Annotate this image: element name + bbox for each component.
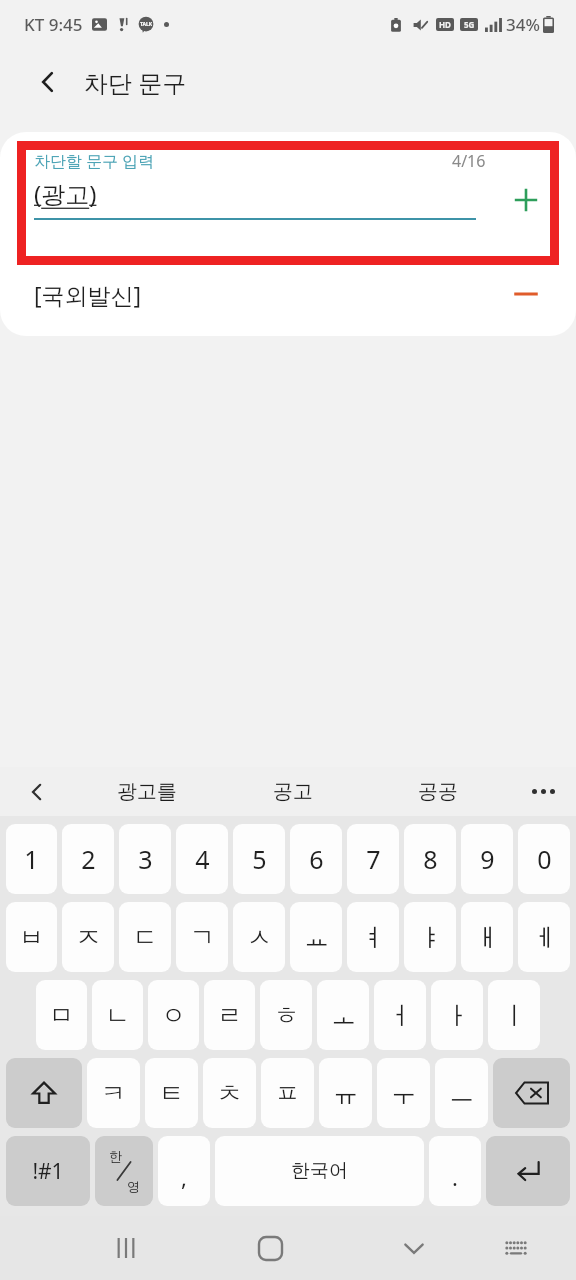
- button[interactable]: 6: [290, 824, 342, 894]
- staticText: 9: [480, 842, 495, 876]
- staticText: 8: [423, 842, 438, 876]
- button[interactable]: Add phrase: [500, 174, 552, 226]
- staticText: HD: [439, 19, 451, 30]
- staticText: 5G: [464, 19, 475, 30]
- button[interactable]: 2: [62, 824, 114, 894]
- button[interactable]: Enter: [486, 1136, 570, 1206]
- staticText: ㅇ: [161, 1000, 186, 1031]
- staticText: ㅠ: [333, 1078, 358, 1109]
- staticText: 4: [195, 842, 210, 876]
- button[interactable]: 8: [404, 824, 456, 894]
- staticText: 공고: [273, 779, 313, 804]
- staticText: 6: [309, 842, 324, 876]
- button[interactable]: ㅏ: [431, 980, 483, 1050]
- button[interactable]: Recent apps: [98, 1220, 154, 1276]
- button[interactable]: 1: [6, 824, 57, 894]
- staticText: 2: [81, 842, 96, 876]
- staticText: ㅁ: [49, 1000, 74, 1031]
- button[interactable]: .: [429, 1136, 481, 1206]
- button[interactable]: Back: [26, 60, 70, 104]
- button[interactable]: ㅓ: [374, 980, 426, 1050]
- staticText: ㅅ: [247, 922, 272, 953]
- staticText: 광고를: [117, 779, 177, 804]
- staticText: 차단할 문구 입력: [34, 150, 155, 172]
- button[interactable]: ㄹ: [204, 980, 255, 1050]
- button[interactable]: ㅠ: [319, 1058, 372, 1128]
- button[interactable]: 공공: [365, 767, 510, 816]
- button[interactable]: Previous suggestions: [0, 767, 74, 816]
- staticText: 한국어: [291, 1159, 348, 1183]
- staticText: ㅔ: [532, 922, 557, 953]
- button[interactable]: 3: [119, 824, 171, 894]
- staticText: 0: [537, 842, 552, 876]
- staticText: ㅊ: [217, 1078, 242, 1109]
- button[interactable]: Shift: [6, 1058, 82, 1128]
- button[interactable]: More options: [510, 767, 576, 816]
- staticText: ㅕ: [361, 922, 386, 953]
- button[interactable]: ㅅ: [233, 902, 285, 972]
- button[interactable]: 0: [518, 824, 570, 894]
- staticText: 차단 문구: [84, 66, 187, 99]
- staticText: (광고): [34, 177, 97, 210]
- button[interactable]: Language: [95, 1136, 153, 1206]
- button[interactable]: ㅎ: [260, 980, 312, 1050]
- button[interactable]: Home: [242, 1220, 298, 1276]
- button[interactable]: ㅇ: [148, 980, 199, 1050]
- button[interactable]: ㅐ: [461, 902, 513, 972]
- staticText: ㄷ: [133, 922, 158, 953]
- button[interactable]: ㅣ: [488, 980, 540, 1050]
- button[interactable]: ㅡ: [435, 1058, 488, 1128]
- staticText: ㅋ: [101, 1078, 126, 1109]
- button[interactable]: 5: [233, 824, 285, 894]
- button[interactable]: ㅋ: [87, 1058, 140, 1128]
- button[interactable]: 4: [176, 824, 228, 894]
- button[interactable]: ㄷ: [119, 902, 171, 972]
- staticText: 34%: [506, 13, 540, 36]
- staticText: 4/16: [452, 150, 486, 172]
- staticText: .: [452, 1162, 458, 1192]
- staticText: 공공: [418, 779, 458, 804]
- button[interactable]: ㅌ: [145, 1058, 198, 1128]
- button[interactable]: 9: [461, 824, 513, 894]
- button[interactable]: ㅛ: [290, 902, 342, 972]
- staticText: 1: [24, 842, 39, 876]
- staticText: 7: [366, 842, 381, 876]
- staticText: 5: [252, 842, 267, 876]
- button[interactable]: !#1: [6, 1136, 90, 1206]
- button[interactable]: 광고를: [74, 767, 220, 816]
- button[interactable]: ㅍ: [261, 1058, 314, 1128]
- staticText: ㄹ: [217, 1000, 242, 1031]
- button[interactable]: ㅑ: [404, 902, 456, 972]
- button[interactable]: 공고: [220, 767, 365, 816]
- button[interactable]: ㄴ: [92, 980, 143, 1050]
- button[interactable]: ㅔ: [518, 902, 570, 972]
- button[interactable]: ㅗ: [317, 980, 369, 1050]
- button[interactable]: Change keyboard: [491, 1223, 541, 1273]
- staticText: ㅛ: [304, 922, 329, 953]
- button[interactable]: ㅕ: [347, 902, 399, 972]
- button[interactable]: 한국어: [215, 1136, 424, 1206]
- button[interactable]: ㅊ: [203, 1058, 256, 1128]
- button[interactable]: ㅈ: [62, 902, 114, 972]
- button[interactable]: ㅜ: [377, 1058, 430, 1128]
- staticText: ㅗ: [331, 1000, 356, 1031]
- staticText: ㅍ: [275, 1078, 300, 1109]
- staticText: 3: [138, 842, 153, 876]
- staticText: ㅣ: [502, 1000, 527, 1031]
- staticText: ㅏ: [445, 1000, 470, 1031]
- staticText: 영: [127, 1178, 140, 1194]
- button[interactable]: 7: [347, 824, 399, 894]
- staticText: ㅂ: [19, 922, 44, 953]
- button[interactable]: ㅂ: [6, 902, 57, 972]
- staticText: ㅜ: [391, 1078, 416, 1109]
- staticText: ㅈ: [76, 922, 101, 953]
- button[interactable]: Remove phrase: [500, 268, 552, 320]
- staticText: 한: [109, 1148, 122, 1164]
- button[interactable]: Backspace: [493, 1058, 570, 1128]
- staticText: ㅑ: [418, 922, 443, 953]
- button[interactable]: Hide keyboard: [386, 1220, 442, 1276]
- button[interactable]: ㄱ: [176, 902, 228, 972]
- button[interactable]: ,: [158, 1136, 210, 1206]
- button[interactable]: ㅁ: [36, 980, 87, 1050]
- staticText: TALK: [140, 21, 153, 28]
